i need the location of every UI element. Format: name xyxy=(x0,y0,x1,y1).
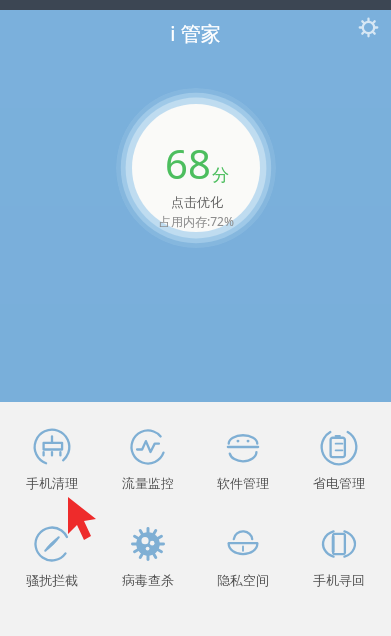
button[interactable]: 68 xyxy=(116,88,276,248)
button[interactable]: i 管家 xyxy=(160,16,231,51)
button[interactable]: 流量监控 xyxy=(105,424,191,493)
staticText: 68 xyxy=(165,136,211,190)
staticText: 病毒查杀 xyxy=(122,572,174,588)
button[interactable]: 隐私空间 xyxy=(200,521,286,590)
staticText: 分 xyxy=(212,165,229,186)
staticText: 占用内存:72% xyxy=(159,213,234,229)
staticText: 点击优化 xyxy=(171,194,223,210)
button[interactable]: 病毒查杀 xyxy=(105,521,191,590)
staticText: 隐私空间 xyxy=(217,572,269,588)
button[interactable]: 省电管理 xyxy=(296,424,382,493)
staticText: 骚扰拦截 xyxy=(26,572,78,588)
staticText: 省电管理 xyxy=(313,475,365,491)
staticText: 手机寻回 xyxy=(313,572,365,588)
staticText: 手机清理 xyxy=(26,475,78,491)
staticText: 流量监控 xyxy=(122,475,174,491)
button[interactable]: Settings xyxy=(351,10,385,44)
staticText: i 管家 xyxy=(170,20,221,47)
button[interactable]: 手机清理 xyxy=(9,424,95,493)
button[interactable]: 手机寻回 xyxy=(296,521,382,590)
button[interactable]: 骚扰拦截 xyxy=(9,521,95,590)
staticText: 软件管理 xyxy=(217,475,269,491)
button[interactable]: 软件管理 xyxy=(200,424,286,493)
